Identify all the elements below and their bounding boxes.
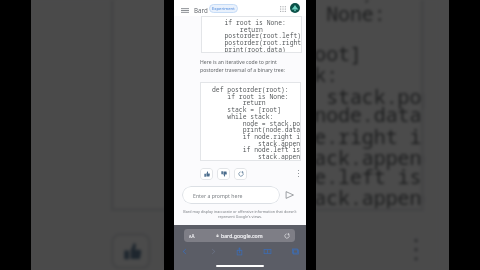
staticText: if node.left is not (148, 162, 424, 190)
button[interactable]: Account (290, 3, 300, 13)
button[interactable]: Enter a prompt here (182, 186, 280, 204)
staticText: def postorder(root): (148, 0, 387, 6)
staticText: if node.right is not (212, 132, 301, 141)
button[interactable]: Tabs (291, 247, 300, 256)
staticText: if root is None: (212, 92, 289, 101)
staticText: Enter a prompt here (193, 192, 243, 199)
staticText: bard.google.com (221, 232, 263, 239)
button[interactable]: Dislike (163, 233, 204, 270)
button[interactable]: Send (282, 187, 297, 203)
staticText: node = stack.pop() (212, 119, 301, 128)
button[interactable]: Menu (178, 4, 191, 16)
staticText: if root is None: (213, 18, 286, 27)
button[interactable]: Like (111, 233, 151, 270)
staticText: postorder(root.right) (213, 38, 302, 47)
button[interactable]: Regenerate (216, 233, 256, 270)
staticText: Bard (194, 6, 208, 14)
staticText: ᴀA (189, 233, 195, 239)
staticText: def postorder(root): (212, 85, 289, 94)
staticText: print(root.data) (213, 45, 286, 53)
button[interactable]: Regenerate (234, 168, 247, 180)
button[interactable]: ᴀA (184, 229, 295, 242)
button[interactable]: More options (294, 167, 303, 180)
staticText: print(node.data) (148, 101, 424, 128)
staticText: node = stack.pop() (148, 82, 424, 110)
staticText: stack = [root] (212, 105, 282, 114)
staticText: stack = [root] (148, 39, 365, 67)
staticText: while stack: (148, 61, 340, 88)
staticText: stack.append(no (212, 152, 301, 161)
staticText: if root is None: (148, 0, 387, 27)
staticText: stack.append(no (212, 139, 301, 148)
staticText: postorder traversal of a binary tree: (200, 67, 285, 74)
button[interactable]: Like (200, 168, 213, 180)
staticText: while stack: (212, 112, 274, 121)
staticText: print(node.data) (212, 125, 301, 134)
staticText: Experiment (212, 6, 235, 12)
button[interactable]: Dislike (217, 168, 230, 180)
staticText: stack.append(no (148, 144, 424, 171)
button[interactable]: Forward (209, 247, 218, 256)
staticText: Bard may display inaccurate or offensive… (174, 209, 306, 219)
staticText: stack.append(no (148, 184, 424, 211)
button[interactable]: Back (180, 247, 189, 256)
staticText: return (213, 25, 263, 34)
staticText: if node.right is not (148, 122, 424, 150)
staticText: return (148, 18, 315, 45)
button[interactable]: Google apps (277, 3, 288, 14)
staticText: Here is an iterative code to print (200, 59, 277, 66)
button[interactable]: Share (235, 247, 244, 256)
button[interactable]: Bookmarks (263, 247, 272, 256)
staticText: return (212, 98, 266, 107)
staticText: if node.left is not (212, 145, 301, 154)
staticText: postorder(root.left) (213, 31, 302, 40)
